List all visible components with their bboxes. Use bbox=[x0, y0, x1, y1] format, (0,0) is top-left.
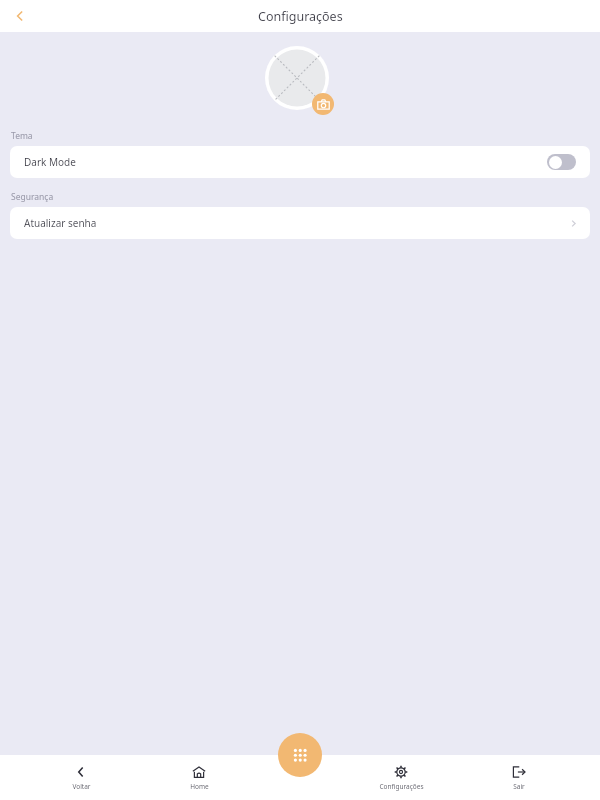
staticText: Dark Mode bbox=[24, 155, 76, 169]
button[interactable]: Alterar foto de perfil bbox=[265, 46, 335, 116]
button[interactable]: Atualizar senha bbox=[10, 207, 590, 239]
button[interactable]: Sair bbox=[481, 762, 557, 794]
button[interactable]: Home bbox=[161, 762, 237, 794]
button[interactable]: Configurações bbox=[363, 762, 439, 794]
staticText: Voltar bbox=[72, 782, 91, 791]
staticText: Sair bbox=[513, 782, 525, 791]
button[interactable]: Voltar bbox=[43, 762, 119, 794]
button[interactable]: Menu bbox=[278, 733, 322, 777]
staticText: Atualizar senha bbox=[24, 216, 97, 230]
staticText: Segurança bbox=[11, 191, 54, 203]
staticText: Home bbox=[190, 782, 209, 791]
button[interactable]: Dark Mode bbox=[10, 146, 590, 178]
button[interactable]: Voltar bbox=[0, 0, 40, 32]
staticText: Configurações bbox=[379, 782, 424, 791]
staticText: Tema bbox=[11, 130, 33, 142]
staticText: Configurações bbox=[258, 8, 343, 25]
